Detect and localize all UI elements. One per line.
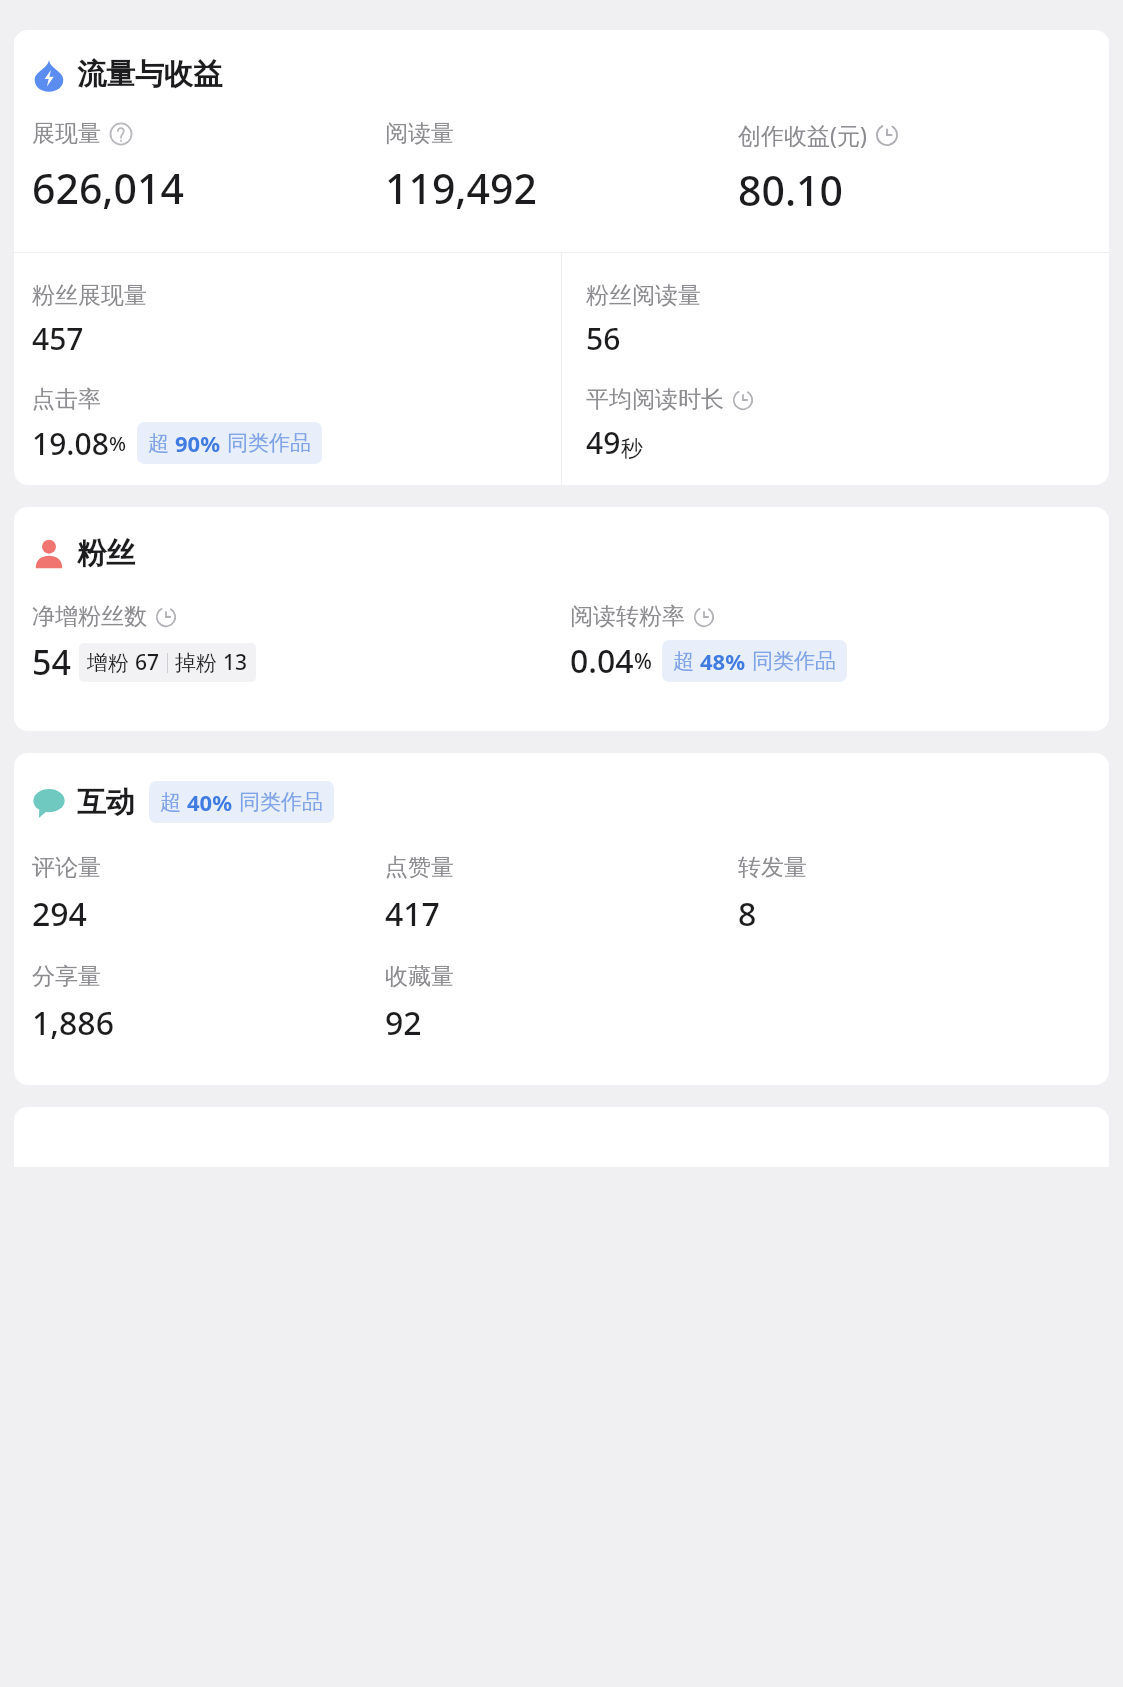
button[interactable]: 分享量 (32, 962, 385, 1045)
staticText: 点击率 (32, 385, 101, 414)
button[interactable]: 净增粉丝数 (32, 602, 570, 685)
button[interactable]: 创作收益(元) (738, 119, 1109, 218)
button[interactable]: 展现量 (32, 119, 385, 216)
other: Fans (32, 537, 66, 571)
other: Updated periodically (875, 123, 899, 147)
button[interactable]: 超 (673, 646, 836, 676)
staticText: 80.10 (738, 162, 843, 218)
staticText: 294 (32, 892, 87, 936)
button[interactable]: 超 (148, 428, 311, 458)
other: Help (109, 122, 133, 146)
staticText: 同类作品 (752, 648, 836, 674)
staticText: 粉丝阅读量 (586, 281, 701, 310)
staticText: 收藏量 (385, 962, 454, 991)
staticText: 净增粉丝数 (32, 602, 147, 631)
staticText: 90% (175, 428, 221, 458)
staticText: 67 (135, 648, 160, 677)
button[interactable]: 阅读转粉率 (570, 602, 1109, 683)
staticText: 超 (673, 648, 694, 674)
staticText: 增粉 (87, 650, 129, 676)
staticText: 同类作品 (227, 430, 311, 456)
button[interactable]: 评论量 (32, 853, 385, 936)
staticText: 超 (160, 789, 181, 815)
staticText: 417 (385, 892, 440, 936)
staticText: 92 (385, 1001, 422, 1045)
staticText: 转发量 (738, 853, 807, 882)
staticText: 40% (187, 787, 233, 817)
staticText: 展现量 (32, 119, 101, 148)
staticText: 秒 (621, 435, 643, 463)
staticText: 48% (700, 646, 746, 676)
staticText: 56 (586, 318, 621, 359)
staticText: 54 (32, 639, 71, 685)
staticText: 626,014 (32, 160, 184, 216)
staticText: % (634, 647, 652, 676)
button[interactable]: 超 (160, 787, 323, 817)
staticText: 119,492 (385, 160, 537, 216)
staticText: 评论量 (32, 853, 101, 882)
other: Updated periodically (155, 606, 177, 628)
staticText: 457 (32, 318, 84, 359)
button[interactable]: 阅读量 (385, 119, 738, 216)
staticText: 1,886 (32, 1001, 114, 1045)
staticText: 19.08 (32, 423, 109, 464)
staticText: 互动 (77, 784, 135, 821)
staticText: 超 (148, 430, 169, 456)
other: Updated periodically (693, 606, 715, 628)
button[interactable]: 收藏量 (385, 962, 738, 1045)
staticText: 粉丝 (77, 535, 135, 572)
staticText: % (109, 430, 127, 457)
other: Interaction (32, 785, 66, 819)
staticText: 阅读转粉率 (570, 602, 685, 631)
staticText: 0.04 (570, 639, 634, 683)
staticText: 点赞量 (385, 853, 454, 882)
other: Traffic and earnings (32, 58, 66, 92)
other: Updated periodically (732, 389, 754, 411)
button[interactable]: 转发量 (738, 853, 1109, 936)
staticText: 阅读量 (385, 119, 454, 148)
staticText: 流量与收益 (77, 56, 222, 93)
button[interactable]: 点赞量 (385, 853, 738, 936)
staticText: 创作收益(元) (738, 119, 867, 150)
staticText: 13 (223, 648, 248, 677)
staticText: 8 (738, 892, 757, 936)
staticText: 同类作品 (239, 789, 323, 815)
staticText: 分享量 (32, 962, 101, 991)
staticText: 平均阅读时长 (586, 385, 724, 414)
staticText: 49 (586, 422, 621, 463)
staticText: 掉粉 (175, 650, 217, 676)
staticText: 粉丝展现量 (32, 281, 147, 310)
